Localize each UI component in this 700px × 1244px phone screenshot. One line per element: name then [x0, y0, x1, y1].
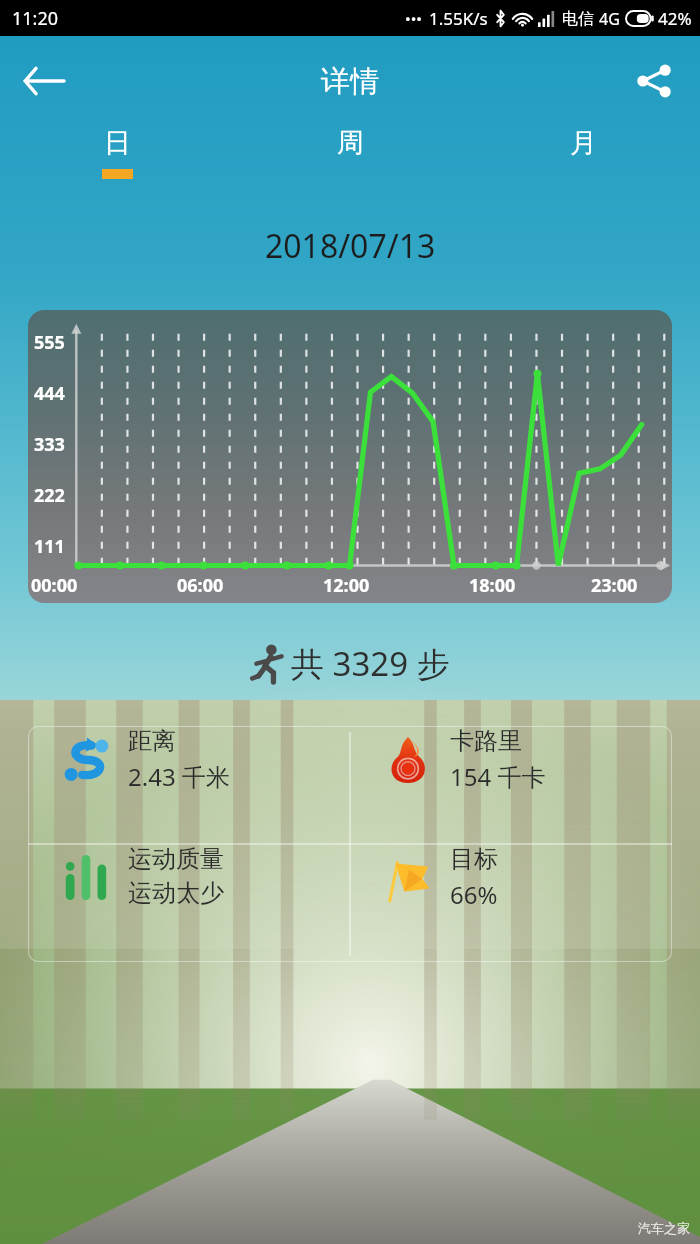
- staticText: 12:00: [323, 573, 370, 598]
- staticText: 详情: [321, 63, 379, 100]
- staticText: 2018/07/13: [265, 224, 436, 268]
- staticText: •••: [405, 9, 422, 29]
- staticText: 1.55K/s: [429, 7, 488, 30]
- button[interactable]: Back: [12, 49, 76, 113]
- staticText: 电信: [562, 9, 594, 29]
- button[interactable]: 目标: [350, 844, 672, 911]
- button[interactable]: 卡路里: [350, 726, 672, 793]
- staticText: 66%: [450, 878, 498, 911]
- button[interactable]: 距离: [28, 726, 350, 793]
- staticText: 06:00: [177, 573, 224, 598]
- staticText: 444: [34, 381, 65, 406]
- staticText: 00:00: [31, 573, 78, 598]
- button[interactable]: 日: [0, 126, 234, 198]
- staticText: 运动太少: [128, 878, 224, 908]
- button[interactable]: Share: [622, 49, 686, 113]
- staticText: 555: [34, 330, 65, 355]
- staticText: 共 3329 步: [291, 641, 450, 686]
- staticText: 42%: [658, 7, 692, 30]
- staticText: 333: [34, 432, 65, 457]
- staticText: 222: [34, 483, 65, 508]
- staticText: 运动质量: [128, 844, 224, 874]
- staticText: 卡路里: [450, 726, 522, 756]
- staticText: 日: [104, 126, 131, 160]
- button[interactable]: 周: [234, 126, 467, 198]
- button[interactable]: 运动质量: [28, 844, 350, 908]
- staticText: 目标: [450, 844, 498, 874]
- staticText: 2.43 千米: [128, 760, 230, 793]
- staticText: 11:20: [12, 6, 59, 31]
- staticText: 周: [337, 126, 364, 160]
- staticText: 154 千卡: [450, 760, 546, 793]
- staticText: 18:00: [469, 573, 516, 598]
- staticText: 23:00: [591, 573, 638, 598]
- staticText: 汽车之家: [638, 1220, 690, 1236]
- button[interactable]: 月: [467, 126, 700, 198]
- staticText: 111: [34, 534, 65, 559]
- staticText: 距离: [128, 726, 176, 756]
- staticText: 月: [570, 126, 597, 160]
- button[interactable]: 555: [28, 310, 672, 603]
- staticText: 4G: [599, 8, 620, 30]
